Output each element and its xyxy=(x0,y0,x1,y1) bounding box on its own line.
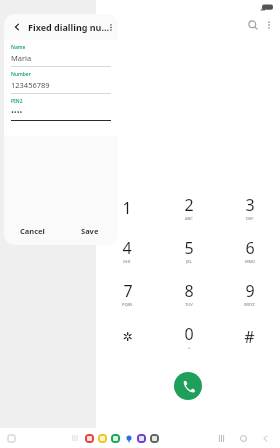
staticText: PIN2 xyxy=(11,98,23,105)
staticText: 7 xyxy=(123,280,133,302)
staticText: WXYZ xyxy=(244,302,255,307)
button[interactable]: Call xyxy=(174,372,202,400)
staticText: 2 xyxy=(184,194,194,216)
button[interactable]: 9 xyxy=(219,272,280,315)
button[interactable]: 5 xyxy=(158,229,219,272)
staticText: 123456789 xyxy=(11,80,50,90)
staticText: Name xyxy=(11,44,26,51)
button[interactable]: 6 xyxy=(219,229,280,272)
button[interactable]: 7 xyxy=(96,272,158,315)
staticText: MNO xyxy=(245,259,255,264)
staticText: Cancel xyxy=(20,226,45,236)
staticText: Number xyxy=(11,71,31,78)
staticText: 1 xyxy=(122,197,132,219)
staticText: PQRS xyxy=(122,302,133,307)
staticText: DEF xyxy=(246,216,254,221)
staticText: 3 xyxy=(245,194,255,216)
staticText: # xyxy=(244,326,255,348)
button[interactable]: Search xyxy=(244,16,262,34)
button[interactable]: Home xyxy=(232,428,254,448)
button[interactable]: Back xyxy=(10,20,24,34)
button[interactable]: 1 xyxy=(96,186,158,229)
staticText: 0 xyxy=(184,323,194,345)
staticText: 6 xyxy=(245,237,255,259)
button[interactable]: More options xyxy=(110,20,112,34)
button[interactable]: Save xyxy=(61,217,118,245)
staticText: + xyxy=(188,345,191,350)
button[interactable]: Browser xyxy=(135,432,148,445)
staticText: ABC xyxy=(185,216,193,221)
button[interactable]: Office xyxy=(83,432,96,445)
button[interactable]: Phone xyxy=(109,432,122,445)
staticText: TUV xyxy=(185,302,193,307)
button[interactable]: Back xyxy=(254,428,276,448)
staticText: •••• xyxy=(11,107,23,117)
button[interactable]: ✲ xyxy=(96,315,158,358)
button[interactable]: Apps xyxy=(70,433,80,443)
staticText: JKL xyxy=(186,259,192,264)
staticText: 9 xyxy=(245,280,255,302)
button[interactable]: Cancel xyxy=(4,217,61,245)
staticText: Fixed dialling nu... xyxy=(28,21,110,33)
button[interactable]: 2 xyxy=(158,186,219,229)
staticText: Maria xyxy=(11,53,32,63)
button[interactable]: Notes xyxy=(96,432,109,445)
staticText: 4 xyxy=(122,237,132,259)
button[interactable]: 4 xyxy=(96,229,158,272)
button[interactable]: Recents xyxy=(210,428,232,448)
button[interactable]: 3 xyxy=(219,186,280,229)
staticText: ✲ xyxy=(122,330,133,344)
button[interactable]: 8 xyxy=(158,272,219,315)
button[interactable]: More options xyxy=(262,16,276,34)
staticText: Save xyxy=(81,226,99,236)
button[interactable]: 0 xyxy=(158,315,219,358)
staticText: GHI xyxy=(123,259,131,264)
button[interactable]: Location xyxy=(122,432,135,445)
button[interactable]: # xyxy=(219,315,280,358)
staticText: 8 xyxy=(184,280,194,302)
button[interactable]: Camera xyxy=(148,432,161,445)
staticText: 5 xyxy=(184,237,194,259)
